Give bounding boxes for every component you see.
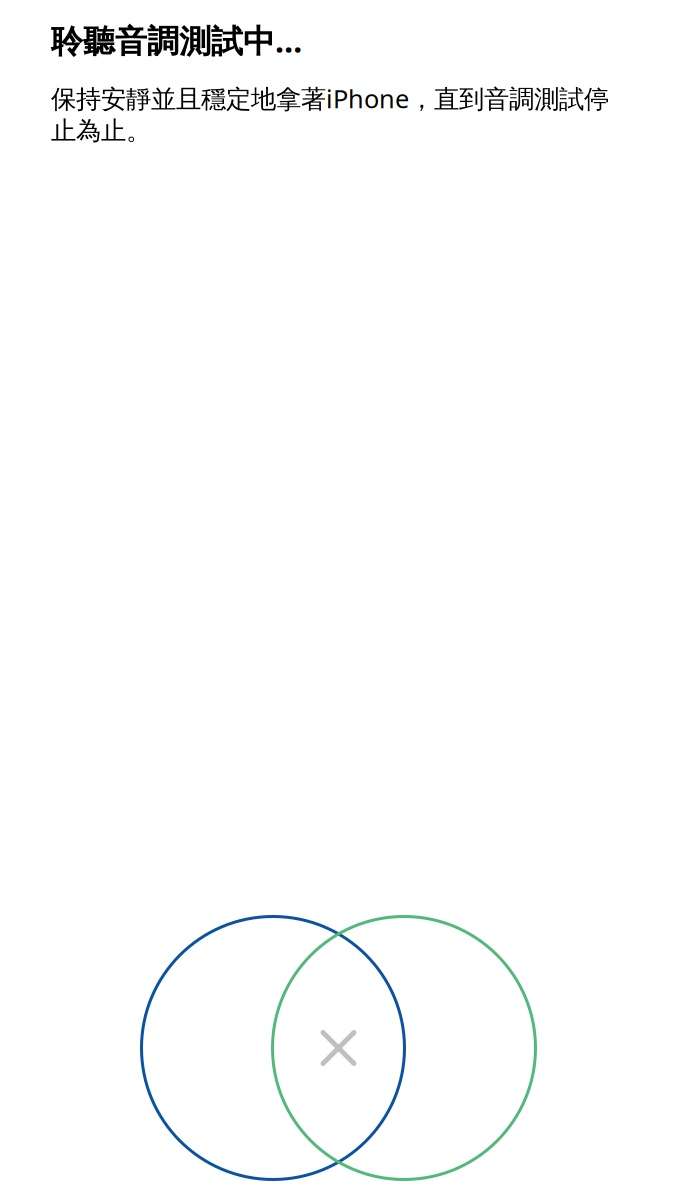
- staticText: 聆聽音調測試中…: [51, 19, 302, 61]
- staticText: 保持安靜並且穩定地拿著iPhone，直到音調測試停止為止。: [51, 81, 609, 146]
